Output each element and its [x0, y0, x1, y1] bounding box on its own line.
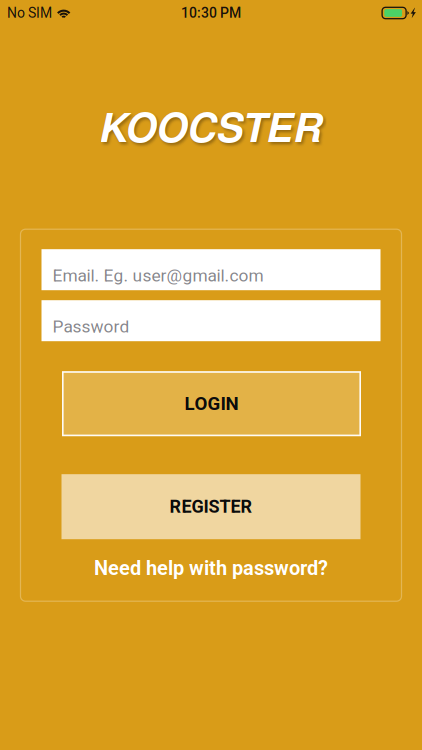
staticText: Email. Eg. user@gmail.com: [52, 265, 263, 286]
staticText: No SIM: [7, 5, 52, 21]
staticText: 10:30 PM: [181, 5, 241, 21]
staticText: REGISTER: [169, 496, 252, 517]
staticText: LOGIN: [184, 393, 238, 415]
staticText: Need help with password?: [94, 556, 328, 580]
button[interactable]: REGISTER: [61, 474, 360, 539]
button[interactable]: LOGIN: [62, 371, 361, 436]
staticText: KOOCSTER: [99, 97, 322, 154]
staticText: Password: [52, 316, 129, 337]
button[interactable]: Need help with password?: [62, 555, 360, 581]
